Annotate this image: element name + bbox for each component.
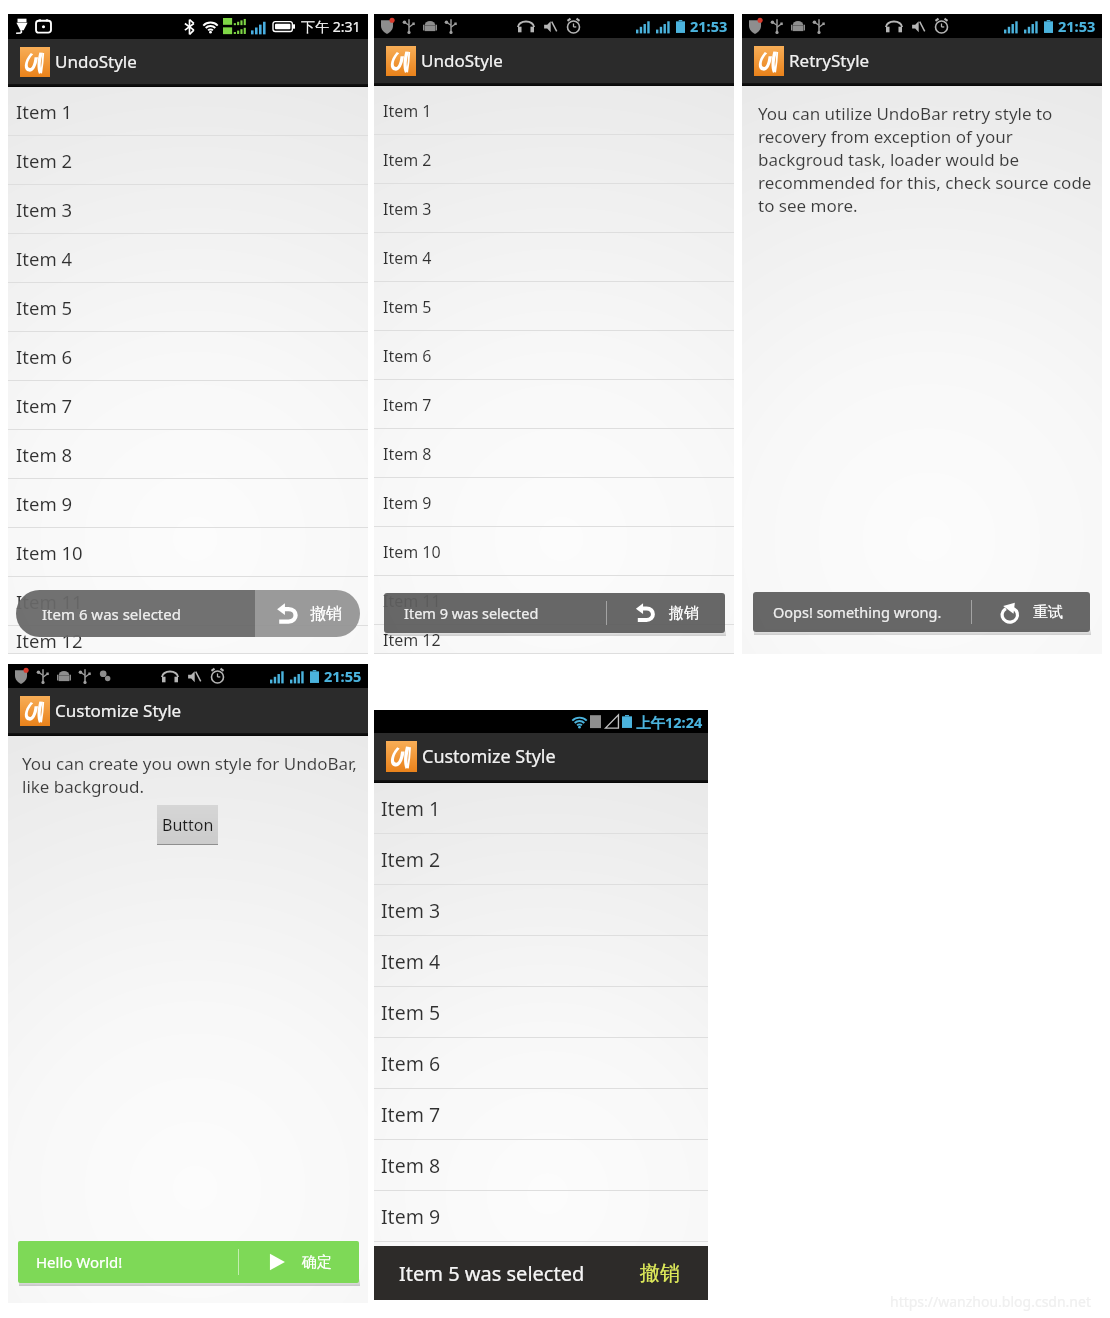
staticText: Item 11	[16, 589, 83, 614]
button[interactable]: Item 8	[8, 430, 368, 479]
staticText: 21:53	[1058, 16, 1096, 36]
staticText: You can create you own style for UndoBar…	[22, 752, 357, 798]
staticText: https://wanzhou.blog.csdn.net	[890, 1292, 1091, 1311]
staticText: 撤销	[640, 1261, 680, 1286]
staticText: Item 4	[381, 948, 441, 975]
button[interactable]: Item 9	[374, 478, 734, 527]
staticText: Item 3	[381, 897, 441, 924]
other: Undo	[633, 601, 657, 625]
staticText: Customize Style	[422, 744, 556, 769]
button[interactable]: Item 1	[374, 86, 734, 135]
staticText: Item 1	[381, 795, 441, 822]
staticText: Item 2	[16, 148, 73, 173]
button[interactable]: Item 6	[8, 332, 368, 381]
button[interactable]: Item 7	[374, 1089, 708, 1140]
staticText: Item 2	[381, 846, 441, 873]
button[interactable]: Customize Style	[374, 733, 708, 783]
staticText: UndoStyle	[55, 50, 137, 73]
staticText: Item 4	[383, 247, 432, 269]
button[interactable]: Item 4	[8, 234, 368, 283]
staticText: Customize Style	[55, 699, 182, 722]
staticText: Item 6	[381, 1050, 441, 1077]
staticText: 撤销	[669, 604, 699, 623]
button[interactable]: Item 5 was selected	[374, 1246, 708, 1300]
staticText: Item 2	[383, 149, 432, 171]
button[interactable]: Item 5	[374, 987, 708, 1038]
button[interactable]: Item 4	[374, 936, 708, 987]
button[interactable]: Item 6 was selected	[16, 590, 360, 637]
button[interactable]: Item 9	[8, 479, 368, 528]
button[interactable]: Customize Style	[8, 688, 368, 736]
button[interactable]: Item 10	[8, 528, 368, 577]
button[interactable]: Item 9 was selected	[384, 593, 725, 633]
staticText: Item 5	[383, 296, 432, 318]
button[interactable]: Item 8	[374, 1140, 708, 1191]
button[interactable]: Item 5	[8, 283, 368, 332]
button[interactable]: Item 1	[374, 783, 708, 834]
staticText: Item 6	[16, 344, 73, 369]
button[interactable]: Item 2	[374, 834, 708, 885]
staticText: Item 9	[16, 491, 73, 516]
staticText: Item 9	[383, 492, 432, 514]
button[interactable]: Undo	[255, 590, 360, 637]
staticText: 确定	[302, 1253, 332, 1272]
staticText: Item 8	[381, 1152, 441, 1179]
button[interactable]: Item 7	[8, 381, 368, 430]
button[interactable]: 撤销	[640, 1246, 680, 1300]
button[interactable]: Item 8	[374, 429, 734, 478]
staticText: Item 11	[383, 590, 441, 612]
button[interactable]: Hello World!	[18, 1241, 359, 1283]
button[interactable]: Item 3	[8, 185, 368, 234]
button[interactable]: Item 5	[374, 282, 734, 331]
staticText: Item 5	[16, 295, 73, 320]
button[interactable]: Retry	[972, 592, 1090, 632]
button[interactable]: Item 7	[374, 380, 734, 429]
staticText: Item 8	[16, 442, 73, 467]
button[interactable]: Item 9	[374, 1191, 708, 1242]
staticText: 21:55	[324, 666, 362, 686]
button[interactable]: Item 10	[374, 527, 734, 576]
staticText: RetryStyle	[789, 49, 870, 72]
button[interactable]: Item 2	[374, 135, 734, 184]
button[interactable]: Confirm	[239, 1241, 359, 1283]
button[interactable]: Oops! something wrong.	[753, 592, 1090, 632]
staticText: UndoStyle	[421, 49, 503, 72]
other: Undo	[274, 601, 300, 627]
button[interactable]: UndoStyle	[8, 39, 368, 87]
staticText: 下午 2:31	[301, 17, 361, 36]
staticText: You can utilize UndoBar retry style to r…	[758, 102, 1092, 217]
button[interactable]: Item 2	[8, 136, 368, 185]
staticText: Item 6	[383, 345, 432, 367]
button[interactable]: Item 11	[8, 577, 368, 626]
staticText: Item 5	[381, 999, 441, 1026]
button[interactable]: Item 11	[374, 576, 734, 625]
button[interactable]: Item 1	[8, 87, 368, 136]
button[interactable]: Item 6	[374, 1038, 708, 1089]
staticText: Item 1	[16, 99, 73, 124]
staticText: Item 7	[16, 393, 73, 418]
staticText: Item 10	[383, 541, 441, 563]
staticText: Item 7	[381, 1101, 441, 1128]
button[interactable]: Button	[157, 805, 218, 845]
staticText: 重试	[1033, 603, 1063, 622]
button[interactable]: Item 3	[374, 885, 708, 936]
staticText: Item 5 was selected	[399, 1260, 585, 1287]
button[interactable]: Item 6	[374, 331, 734, 380]
button[interactable]: RetryStyle	[742, 38, 1102, 86]
staticText: Item 10	[16, 540, 83, 565]
staticText: 21:53	[690, 16, 728, 36]
other: Retry	[999, 601, 1021, 623]
staticText: Hello World!	[36, 1252, 123, 1272]
button[interactable]: Item 3	[374, 184, 734, 233]
staticText: Item 9 was selected	[404, 603, 539, 623]
staticText: Item 3	[383, 198, 432, 220]
button[interactable]: Undo	[607, 593, 725, 633]
staticText: Oops! something wrong.	[773, 602, 942, 622]
button[interactable]: UndoStyle	[374, 38, 734, 86]
staticText: Item 4	[16, 246, 73, 271]
staticText: Item 3	[16, 197, 73, 222]
button[interactable]: Item 12	[374, 625, 734, 654]
button[interactable]: Item 12	[8, 626, 368, 654]
button[interactable]: Item 4	[374, 233, 734, 282]
staticText: Button	[162, 814, 214, 836]
